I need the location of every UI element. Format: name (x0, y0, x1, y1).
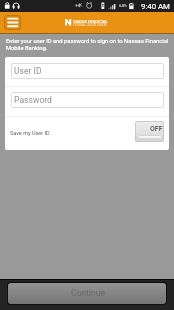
staticText: Password (14, 95, 52, 105)
button[interactable]: Password (11, 92, 164, 108)
staticText: 9:40 AM (141, 2, 170, 11)
staticText: OFF (150, 125, 163, 133)
button[interactable] (5, 117, 169, 150)
staticText: NASSAU FINANCIAL (73, 19, 108, 24)
button[interactable]: User ID (11, 63, 164, 79)
button[interactable]: Save my User ID, off (135, 121, 164, 142)
staticText: Save my User ID (10, 130, 50, 136)
staticText: Mobile Banking. (6, 45, 48, 52)
staticText: Continue (71, 288, 105, 298)
staticText: Enter your user ID and password to sign … (6, 38, 169, 45)
staticText: 64% (119, 3, 127, 8)
staticText: FEDERAL CREDIT UNION (73, 23, 107, 27)
staticText: User ID (14, 66, 42, 76)
button[interactable]: Open navigation menu (4, 15, 21, 30)
button[interactable]: Continue (7, 282, 167, 305)
